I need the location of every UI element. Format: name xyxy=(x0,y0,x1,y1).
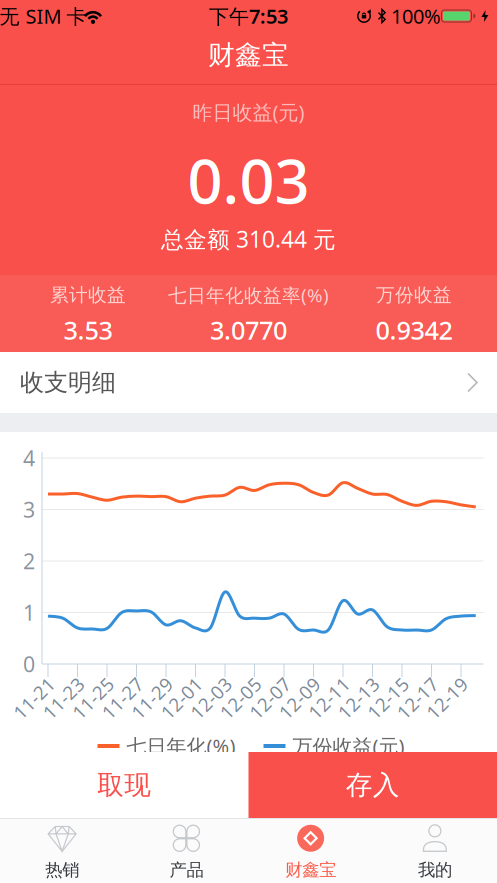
button[interactable]: 存入 xyxy=(248,752,497,818)
staticText: 100% xyxy=(391,3,441,29)
staticText: 财鑫宝 xyxy=(285,859,336,881)
staticText: 1 xyxy=(23,598,35,627)
staticText: 产品 xyxy=(169,859,203,881)
staticText: 11-29 xyxy=(127,686,177,710)
staticText: 财鑫宝 xyxy=(208,39,289,71)
staticText: 12-01 xyxy=(156,686,206,710)
staticText: 七日年化(%) xyxy=(126,733,235,759)
staticText: 12-05 xyxy=(215,686,265,710)
button[interactable]: 取现 xyxy=(0,752,248,818)
staticText: 万份收益(元) xyxy=(292,733,404,759)
staticText: 12-03 xyxy=(186,686,236,710)
button[interactable]: 收支明细 xyxy=(0,352,497,413)
staticText: 无 SIM 卡 xyxy=(0,3,86,29)
staticText: 昨日收益(元) xyxy=(192,99,304,125)
staticText: 热销 xyxy=(45,859,79,881)
staticText: 12-11 xyxy=(304,686,354,710)
staticText: 12-13 xyxy=(333,686,383,710)
staticText: 下午7:53 xyxy=(209,3,288,29)
staticText: 累计收益 xyxy=(50,283,126,306)
button[interactable]: 产品 xyxy=(124,819,248,883)
staticText: 0 xyxy=(23,650,35,678)
button[interactable]: 财鑫宝 xyxy=(248,819,373,883)
staticText: 11-25 xyxy=(68,686,118,710)
staticText: 3 xyxy=(23,495,35,524)
staticText: 取现 xyxy=(97,769,151,801)
button[interactable]: 我的 xyxy=(373,819,497,883)
staticText: 0.9342 xyxy=(375,313,452,347)
staticText: 12-17 xyxy=(392,686,442,710)
staticText: 12-07 xyxy=(245,686,295,710)
staticText: 12-19 xyxy=(422,686,472,710)
staticText: 万份收益 xyxy=(376,283,452,306)
button[interactable]: 热销 xyxy=(0,819,124,883)
staticText: 0.03 xyxy=(187,139,309,221)
staticText: 12-15 xyxy=(363,686,413,710)
staticText: 4 xyxy=(23,444,35,472)
staticText: 收支明细 xyxy=(20,368,116,397)
staticText: 3.0770 xyxy=(210,313,287,347)
staticText: 11-23 xyxy=(38,686,88,710)
staticText: 总金额 310.44 元 xyxy=(161,224,336,254)
staticText: 11-27 xyxy=(97,686,147,710)
staticText: 我的 xyxy=(418,859,452,881)
staticText: 3.53 xyxy=(63,313,112,347)
staticText: 七日年化收益率(%) xyxy=(168,283,329,307)
staticText: 2 xyxy=(23,547,35,575)
staticText: 11-21 xyxy=(9,686,59,710)
staticText: 存入 xyxy=(346,769,400,801)
staticText: 12-09 xyxy=(274,686,324,710)
